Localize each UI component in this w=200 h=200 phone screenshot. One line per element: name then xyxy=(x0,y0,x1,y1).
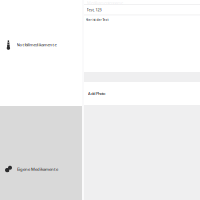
staticText: Add Photo xyxy=(88,91,105,96)
staticText: Medikamentenname xyxy=(87,0,123,5)
staticText: Eigene Medikamente xyxy=(17,166,58,172)
button[interactable]: Notfallmedikamente xyxy=(0,38,82,51)
staticText: Notfallmedikamente xyxy=(16,42,56,47)
staticText: Test, 123 xyxy=(86,7,101,12)
button[interactable]: Eigene Medikamente xyxy=(0,163,82,175)
staticText: Hier ist der Text xyxy=(85,18,108,22)
button[interactable]: Add Photo xyxy=(84,82,200,105)
